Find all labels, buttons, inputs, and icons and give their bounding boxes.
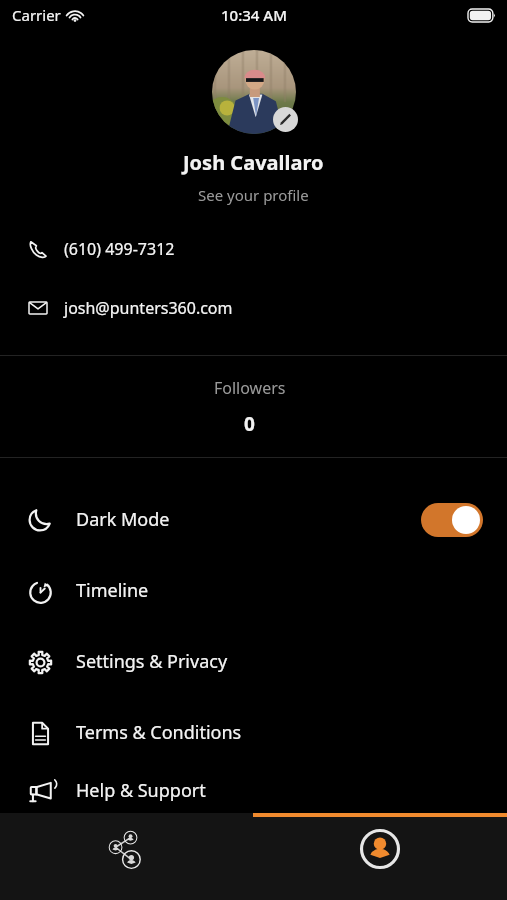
button[interactable]: Dark Mode toggle <box>421 503 483 537</box>
button[interactable]: Timeline <box>0 555 507 626</box>
button[interactable]: Network <box>0 813 253 900</box>
button[interactable]: Josh Cavallaro <box>183 149 324 176</box>
staticText: Timeline <box>76 578 149 603</box>
button[interactable]: (610) 499-7312 <box>0 231 507 267</box>
staticText: Terms & Conditions <box>76 720 242 745</box>
button[interactable]: Followers <box>0 356 507 457</box>
staticText: 0 <box>244 411 255 437</box>
staticText: (610) 499-7312 <box>64 238 175 260</box>
staticText: Followers <box>214 377 286 399</box>
button[interactable]: Help & Support <box>0 768 507 813</box>
button[interactable]: Edit profile photo <box>212 50 296 134</box>
staticText: Help & Support <box>76 778 206 803</box>
staticText: Settings & Privacy <box>76 649 228 674</box>
button[interactable]: Profile <box>253 813 507 900</box>
button[interactable]: Settings & Privacy <box>0 626 507 697</box>
button[interactable]: josh@punters360.com <box>0 290 507 326</box>
staticText: 10:34 AM <box>221 5 287 25</box>
staticText: Josh Cavallaro <box>183 149 324 176</box>
button[interactable]: Terms & Conditions <box>0 697 507 768</box>
staticText: Dark Mode <box>76 507 170 532</box>
button[interactable]: Dark Mode <box>0 484 507 555</box>
button[interactable]: See your profile <box>198 185 309 205</box>
staticText: See your profile <box>198 185 309 205</box>
staticText: josh@punters360.com <box>64 297 233 319</box>
staticText: Carrier <box>12 5 61 25</box>
